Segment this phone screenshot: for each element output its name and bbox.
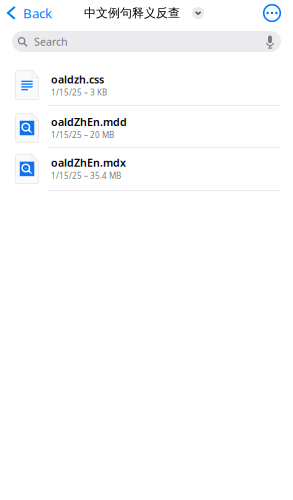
staticText: oaldZhEn.mdd — [51, 115, 127, 129]
button[interactable]: oaldZhEn.mdd — [0, 106, 293, 148]
staticText: 中文例句释义反查 — [84, 6, 180, 20]
button[interactable]: 中文例句释义反查 — [84, 0, 204, 26]
button[interactable]: Search — [0, 31, 293, 52]
staticText: Search — [34, 34, 68, 49]
staticText: 1/15/25 – 3 KB — [51, 87, 107, 98]
button[interactable]: Back — [0, 0, 59, 26]
button[interactable]: oaldZhEn.mdx — [0, 148, 293, 191]
staticText: oaldzh.css — [51, 72, 104, 86]
staticText: 1/15/25 – 20 MB — [51, 129, 114, 140]
staticText: Back — [23, 4, 52, 22]
button[interactable]: More options — [263, 0, 293, 26]
button[interactable]: oaldzh.css — [0, 63, 293, 106]
staticText: 1/15/25 – 35.4 MB — [51, 170, 121, 181]
staticText: oaldZhEn.mdx — [51, 156, 126, 170]
